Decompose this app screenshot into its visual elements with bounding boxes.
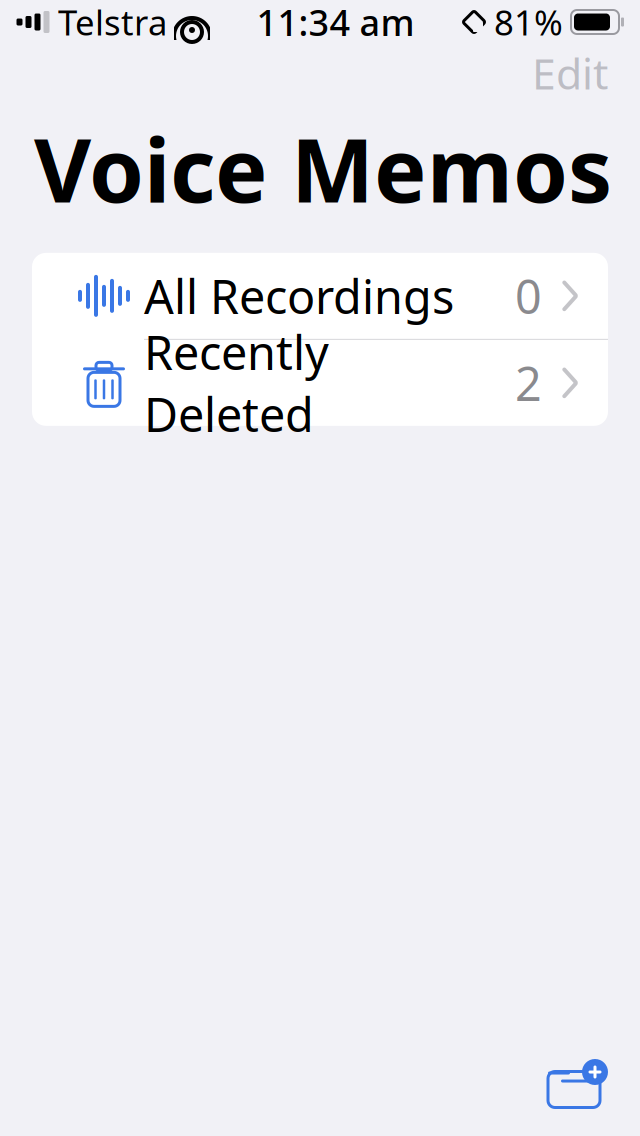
staticText: 2 [515,352,542,414]
staticText: Voice Memos [34,110,612,227]
button[interactable]: All Recordings [32,253,608,339]
button[interactable]: Recently Deleted [32,340,608,426]
staticText: Edit [532,45,608,101]
staticText: All Recordings [144,265,454,327]
button[interactable]: New Folder [526,1050,622,1126]
staticText: 11:34 am [256,0,414,46]
staticText: 81% [494,0,563,45]
staticText: Recently Deleted [144,321,329,445]
button[interactable]: Edit [516,35,624,111]
staticText: 0 [515,265,542,327]
staticText: Telstra [58,0,167,45]
